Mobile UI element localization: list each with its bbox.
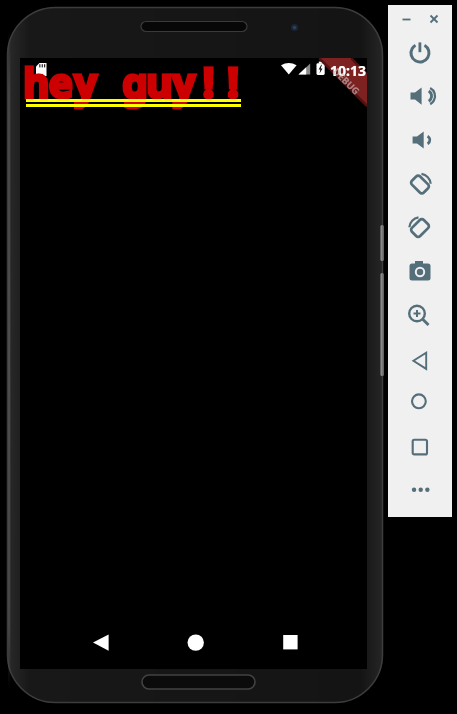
button[interactable] — [404, 173, 436, 205]
button[interactable] — [398, 11, 414, 27]
staticText: 10:13 — [330, 61, 366, 80]
button[interactable] — [404, 41, 436, 73]
button[interactable] — [404, 436, 436, 468]
button[interactable] — [275, 627, 307, 659]
button[interactable] — [404, 303, 436, 335]
button[interactable] — [404, 262, 436, 294]
button[interactable] — [180, 627, 212, 659]
button[interactable] — [404, 481, 436, 513]
staticText: hey guy!! — [24, 54, 246, 110]
button[interactable] — [85, 627, 117, 659]
button[interactable] — [404, 128, 436, 160]
staticText: DEBUG — [330, 65, 363, 98]
button[interactable] — [404, 391, 436, 423]
button[interactable] — [404, 86, 436, 118]
button[interactable] — [426, 11, 442, 27]
staticText: hey guy!! — [24, 54, 246, 110]
button[interactable] — [404, 346, 436, 378]
button[interactable] — [404, 214, 436, 246]
